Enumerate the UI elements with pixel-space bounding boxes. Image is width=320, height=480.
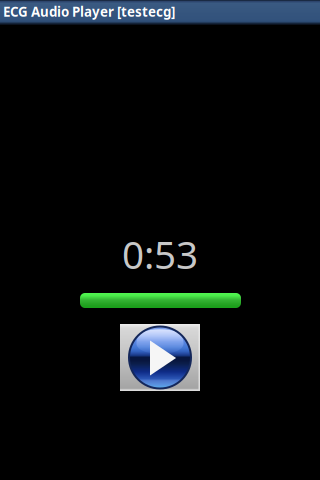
staticText: ECG Audio Player [testecg] <box>3 3 175 20</box>
button[interactable]: Play <box>120 324 200 391</box>
staticText: 0:53 <box>122 228 198 280</box>
